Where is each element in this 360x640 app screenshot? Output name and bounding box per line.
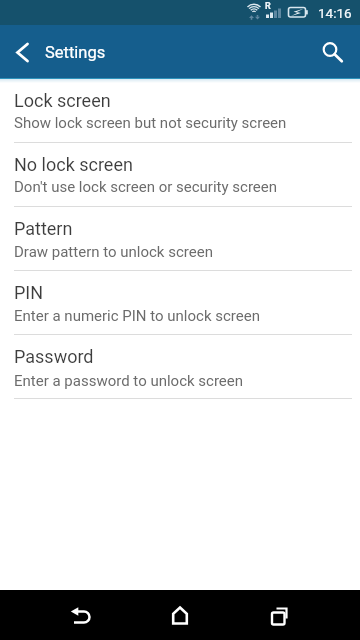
staticText: Password	[14, 346, 94, 367]
staticText: Lock screen	[14, 90, 111, 111]
button[interactable]	[252, 591, 300, 639]
button[interactable]	[0, 25, 40, 79]
staticText: Enter a numeric PIN to unlock screen	[14, 307, 260, 325]
staticText: PIN	[14, 282, 44, 303]
staticText: Don't use lock screen or security screen	[14, 178, 278, 196]
button[interactable]	[156, 591, 204, 639]
staticText: 14:16	[318, 5, 352, 21]
staticText: R	[265, 1, 271, 12]
staticText: Enter a password to unlock screen	[14, 372, 244, 390]
button[interactable]	[312, 25, 360, 79]
button[interactable]	[56, 591, 104, 639]
staticText: Draw pattern to unlock screen	[14, 243, 213, 261]
button[interactable]: Password	[0, 335, 360, 399]
staticText: Show lock screen but not security screen	[14, 114, 287, 132]
button[interactable]: Pattern	[0, 207, 360, 271]
button[interactable]: PIN	[0, 271, 360, 335]
button[interactable]: No lock screen	[0, 143, 360, 207]
staticText: Pattern	[14, 218, 73, 239]
staticText: Settings	[45, 43, 106, 62]
button[interactable]: Lock screen	[0, 79, 360, 143]
staticText: No lock screen	[14, 154, 133, 175]
